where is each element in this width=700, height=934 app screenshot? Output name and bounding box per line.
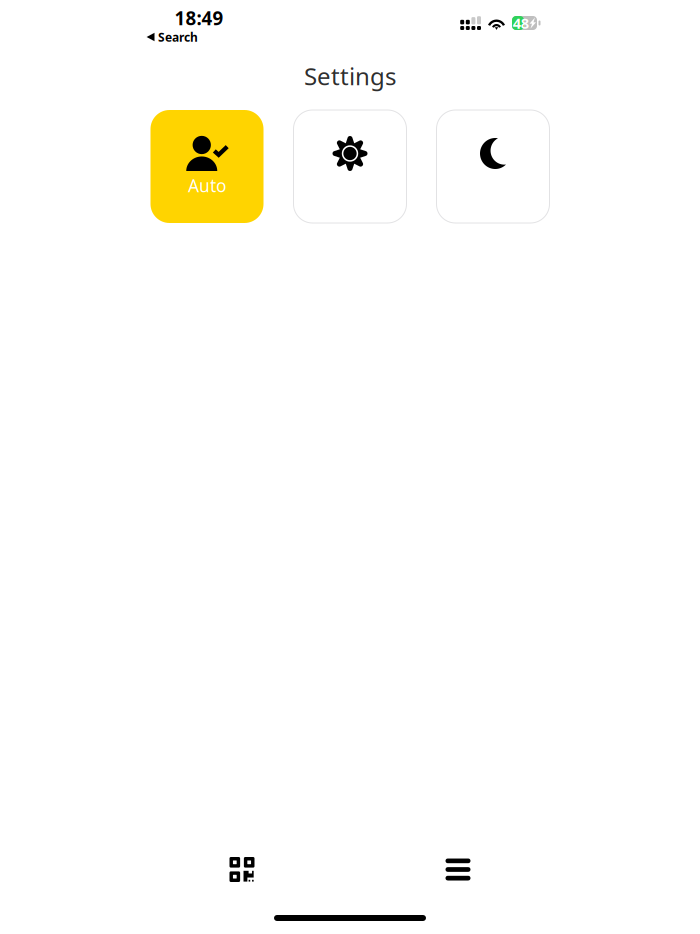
- staticText: Settings: [304, 60, 396, 92]
- staticText: 48: [513, 13, 529, 33]
- staticText: 18:49: [174, 6, 223, 30]
- staticText: Search: [158, 29, 198, 45]
- button[interactable]: Auto appearance: [150, 110, 263, 223]
- button[interactable]: Always Light: [293, 110, 406, 223]
- button[interactable]: Scan QR code: [216, 844, 267, 895]
- button[interactable]: Always Dark: [436, 110, 549, 223]
- button[interactable]: Search: [146, 29, 198, 45]
- button[interactable]: Menu: [432, 845, 483, 893]
- staticText: Auto: [188, 174, 226, 197]
